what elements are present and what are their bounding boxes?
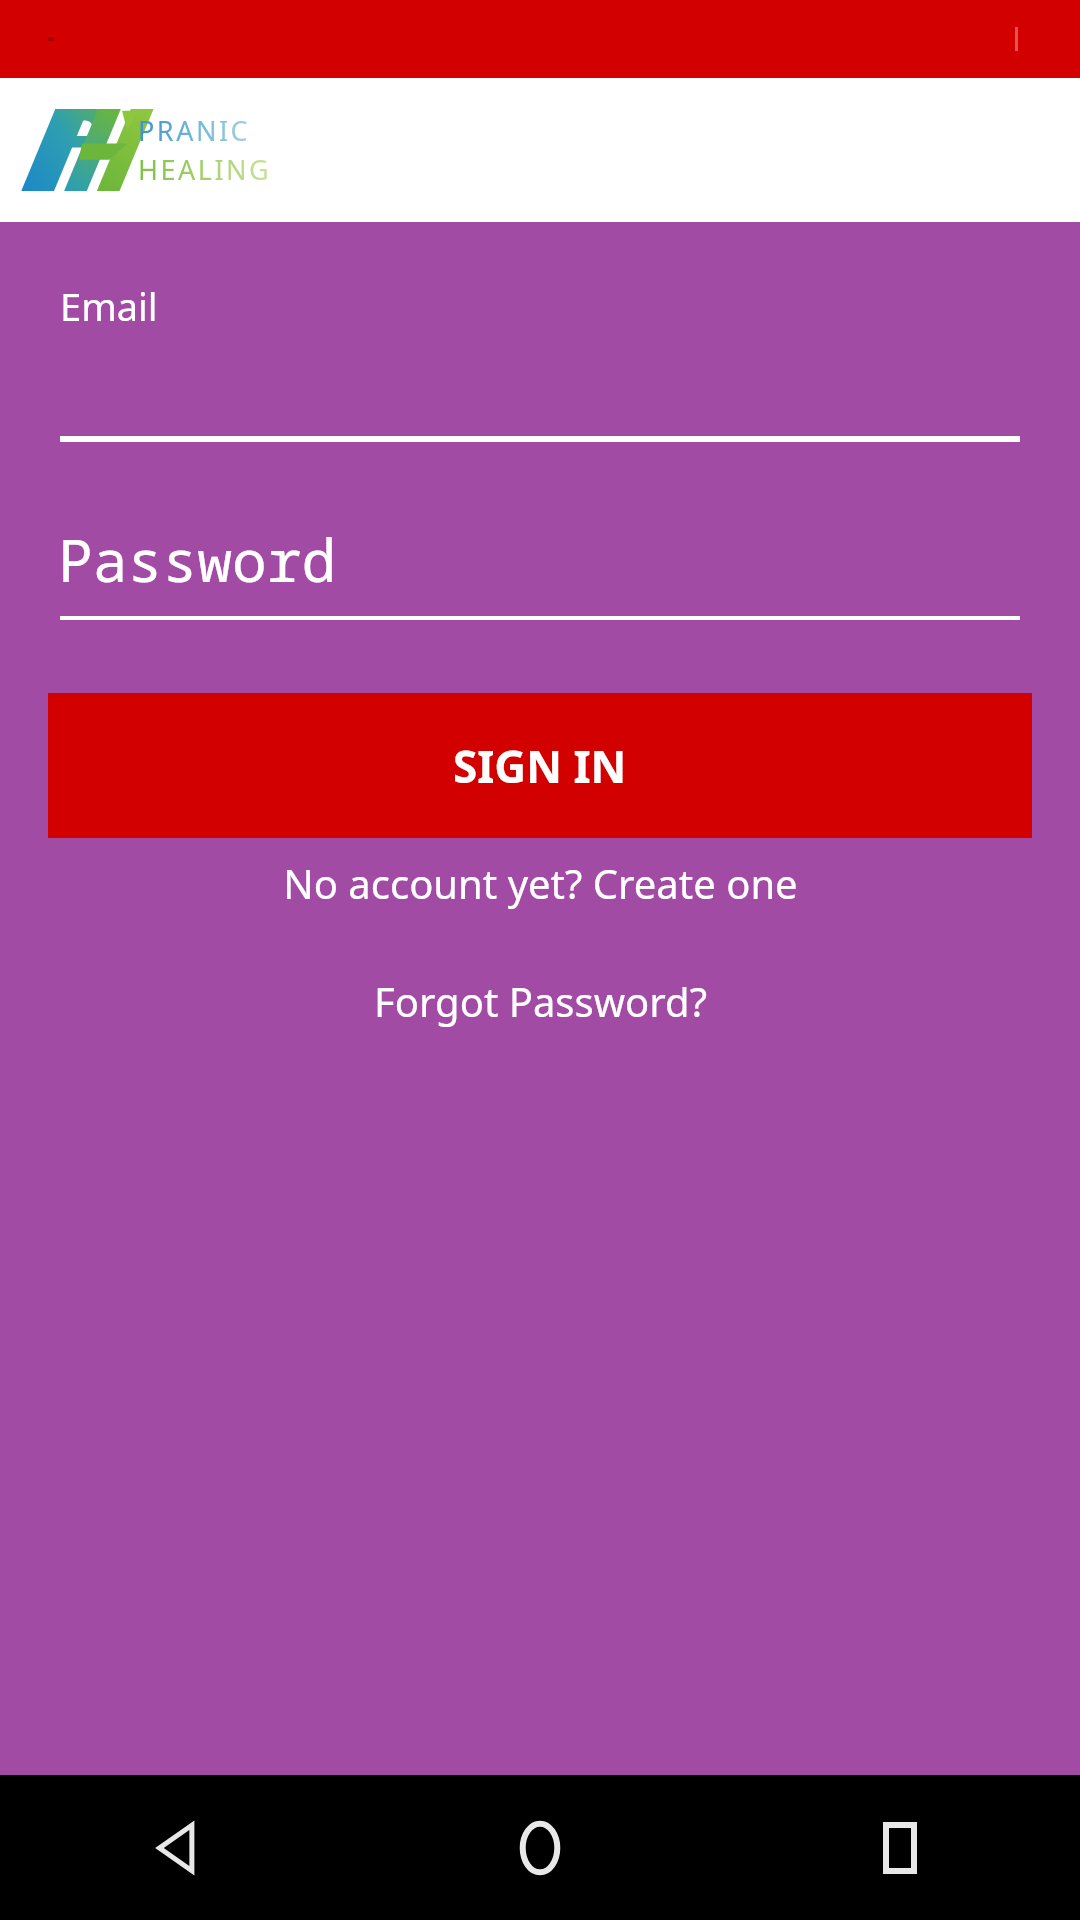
staticText: Forgot Password? — [374, 974, 707, 1028]
button[interactable]: Home — [360, 1775, 720, 1920]
button[interactable]: Password — [0, 520, 1080, 620]
button[interactable]: Back — [0, 1775, 360, 1920]
staticText: Password — [58, 520, 337, 599]
button[interactable]: Email — [0, 272, 1080, 442]
staticText: Email — [60, 280, 158, 332]
button[interactable]: Forgot Password? — [0, 966, 1080, 1036]
staticText: PRANIC — [138, 112, 251, 149]
staticText: HEALING — [138, 151, 272, 188]
button[interactable]: Recent apps — [720, 1775, 1080, 1920]
button[interactable]: No account yet? Create one — [0, 848, 1080, 918]
staticText: No account yet? Create one — [283, 856, 798, 910]
button[interactable]: SIGN IN — [48, 693, 1032, 838]
staticText: SIGN IN — [453, 736, 627, 796]
